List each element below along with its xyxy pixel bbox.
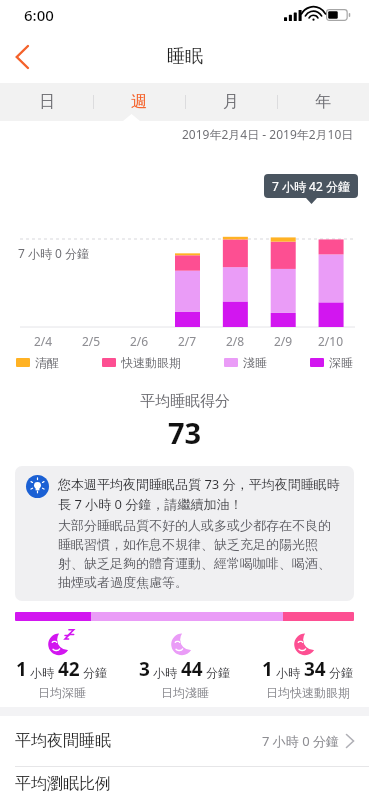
staticText: 2/10 <box>318 333 344 349</box>
staticText: 44 <box>181 656 203 682</box>
staticText: 日 <box>39 92 55 112</box>
staticText: 日均深睡 <box>38 685 86 700</box>
staticText: 分鐘 <box>203 664 231 680</box>
staticText: 小時 <box>27 664 58 680</box>
staticText: 34 <box>304 656 326 682</box>
staticText: 2/5 <box>82 333 101 349</box>
staticText: 平均夜間睡眠 <box>15 731 111 751</box>
staticText: 2/9 <box>274 333 293 349</box>
button[interactable]: Back <box>0 35 44 79</box>
staticText: 您本週平均夜間睡眠品質 73 分，平均夜間睡眠時長 7 小時 0 分鐘，請繼續加… <box>58 475 343 513</box>
button[interactable]: 平均夜間睡眠 <box>0 716 369 766</box>
staticText: 2019年2月4日 - 2019年2月10日 <box>182 126 354 142</box>
staticText: 1 <box>16 656 27 682</box>
button[interactable]: 平均瀏眠比例 <box>0 767 369 800</box>
staticText: 清醒 <box>35 355 59 370</box>
staticText: 7 小時 0 分鐘 <box>262 732 340 750</box>
staticText: 1 <box>262 656 273 682</box>
staticText: 快速動眼期 <box>121 355 181 370</box>
staticText: 2/8 <box>226 333 245 349</box>
staticText: 分鐘 <box>80 664 108 680</box>
button[interactable]: 月 <box>185 83 277 121</box>
staticText: 平均睡眠得分 <box>140 392 230 411</box>
staticText: 6:00 <box>24 5 54 25</box>
staticText: 2/6 <box>130 333 149 349</box>
staticText: 3 <box>139 656 150 682</box>
staticText: 小時 <box>150 664 181 680</box>
staticText: 日均快速動眼期 <box>266 685 350 700</box>
staticText: 大部分睡眠品質不好的人或多或少都存在不良的睡眠習慣，如作息不規律、缺乏充足的陽光… <box>58 517 343 590</box>
staticText: 日均淺睡 <box>161 685 209 700</box>
staticText: 月 <box>223 92 239 112</box>
button[interactable]: 年 <box>277 83 369 121</box>
staticText: 週 <box>131 92 147 112</box>
staticText: 淺睡 <box>243 355 267 370</box>
staticText: 年 <box>315 92 331 112</box>
staticText: 平均瀏眠比例 <box>15 774 111 794</box>
staticText: 73 <box>168 413 202 452</box>
staticText: 7 小時 0 分鐘 <box>18 245 90 261</box>
staticText: 2/7 <box>178 333 197 349</box>
staticText: 42 <box>58 656 80 682</box>
staticText: 7 小時 42 分鐘 <box>272 178 350 194</box>
staticText: 睡眠 <box>167 45 203 68</box>
staticText: 2/4 <box>34 333 53 349</box>
staticText: 小時 <box>273 664 304 680</box>
staticText: 分鐘 <box>326 664 354 680</box>
button[interactable]: 日 <box>0 83 93 121</box>
staticText: 深睡 <box>329 355 353 370</box>
button[interactable]: 週 <box>93 83 185 121</box>
